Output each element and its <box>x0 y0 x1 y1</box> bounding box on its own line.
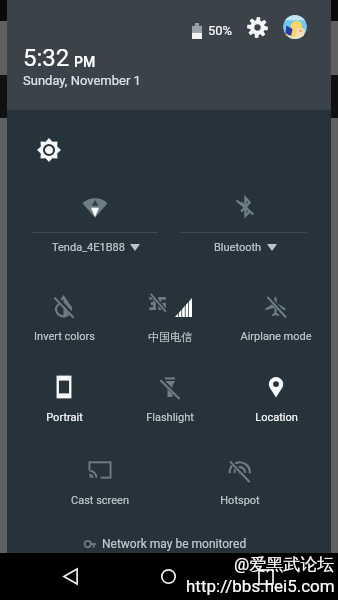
button[interactable]: 中国电信 <box>117 294 223 354</box>
button[interactable]: Airplane mode <box>223 294 329 354</box>
staticText: Airplane mode <box>240 330 312 343</box>
button[interactable]: Bluetooth <box>170 196 318 254</box>
button[interactable]: Location <box>223 375 329 435</box>
button[interactable]: Invert colors <box>11 294 117 354</box>
button[interactable]: Home <box>146 553 190 600</box>
staticText: 5:32 <box>23 44 70 72</box>
button[interactable]: Settings <box>245 15 269 39</box>
button[interactable]: User profile <box>283 15 307 39</box>
button[interactable]: Brightness <box>37 138 61 162</box>
staticText: 50% <box>208 23 233 38</box>
staticText: Portrait <box>46 411 83 424</box>
staticText: Network may be monitored <box>102 537 247 551</box>
button[interactable]: Back <box>48 553 92 600</box>
button[interactable]: Portrait <box>11 375 117 435</box>
staticText: Cast screen <box>71 494 129 507</box>
button[interactable]: Hotspot <box>187 458 293 518</box>
staticText: Flashlight <box>146 411 194 424</box>
staticText: Hotspot <box>220 494 260 507</box>
staticText: Tenda_4E1B88 <box>52 241 125 254</box>
staticText: Sunday, November 1 <box>23 73 141 88</box>
button[interactable]: Recent apps <box>244 553 288 600</box>
staticText: @爱黑武论坛 <box>234 554 335 575</box>
button[interactable]: Cast screen <box>47 458 153 518</box>
staticText: 中国电信 <box>148 330 192 344</box>
staticText: Bluetooth <box>214 241 262 254</box>
staticText: http://bbs.hei5.com <box>186 576 335 596</box>
staticText: Location <box>255 411 298 424</box>
staticText: Invert colors <box>34 330 95 343</box>
button[interactable]: Tenda_4E1B88 <box>21 196 169 254</box>
staticText: PM <box>74 54 96 70</box>
button[interactable]: Flashlight <box>117 375 223 435</box>
